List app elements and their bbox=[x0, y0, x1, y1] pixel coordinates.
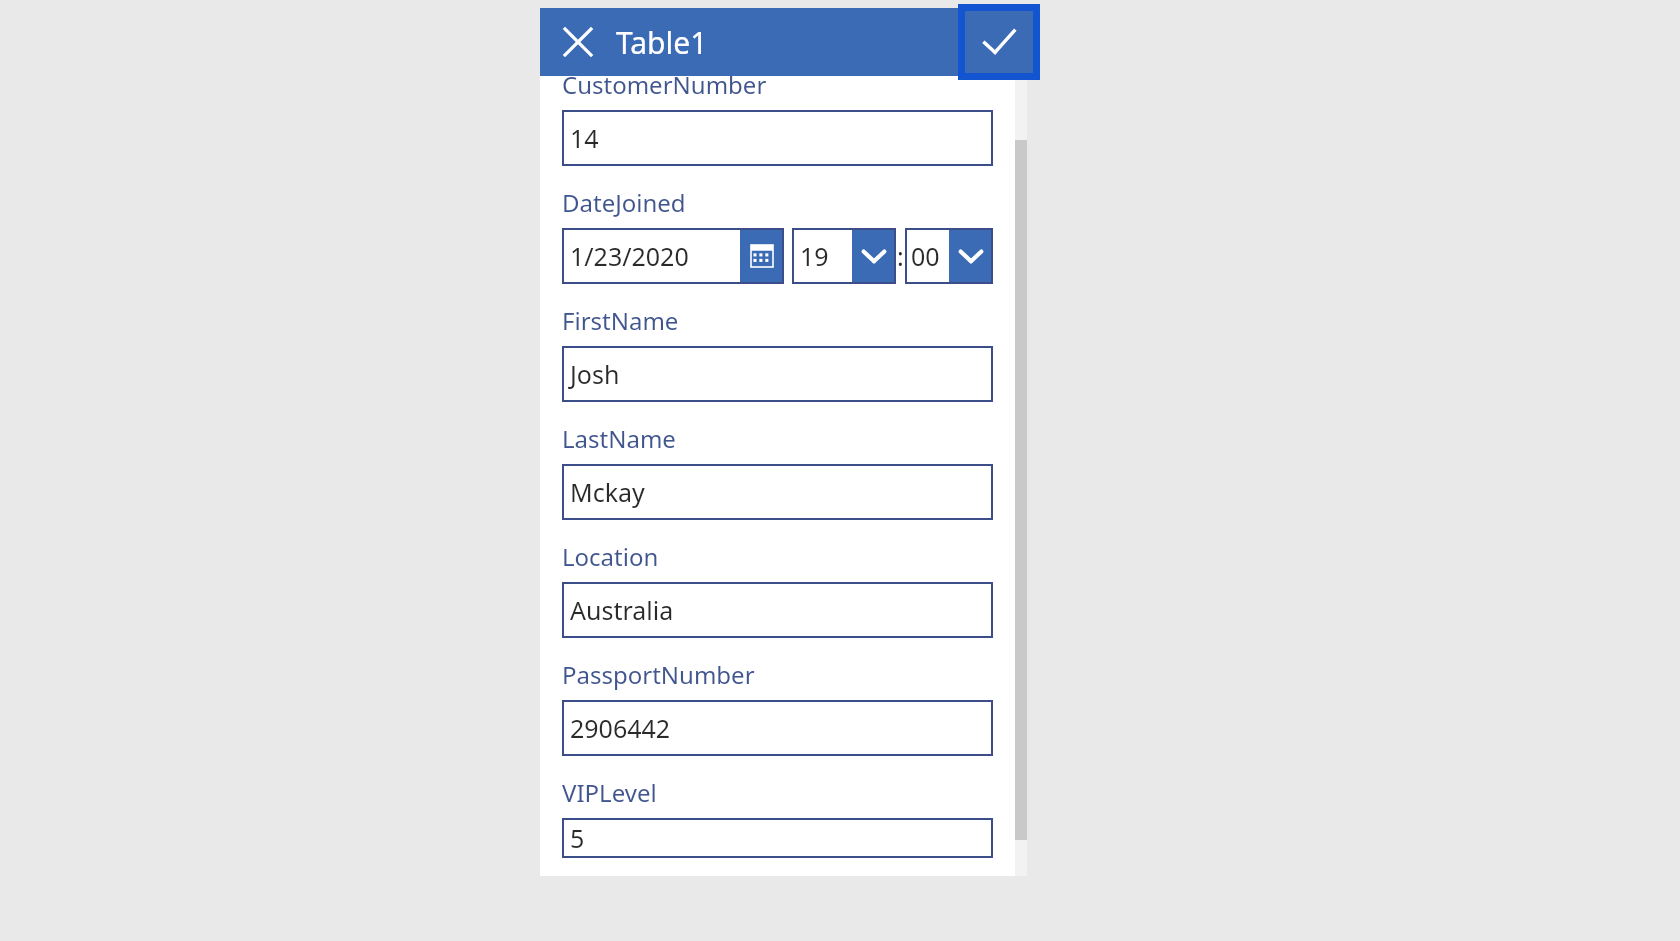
staticText: Table1 bbox=[616, 22, 708, 63]
button[interactable]: 19 bbox=[792, 228, 896, 284]
button[interactable]: Confirm bbox=[965, 11, 1033, 73]
staticText: Location bbox=[562, 540, 659, 573]
button[interactable]: Beto Yark bbox=[562, 8, 993, 48]
staticText: FirstName bbox=[562, 304, 679, 337]
staticText: 19 bbox=[800, 239, 852, 273]
staticText: PassportNumber bbox=[562, 658, 755, 691]
staticText: VIPLevel bbox=[562, 776, 657, 809]
staticText: Mckay bbox=[570, 475, 645, 509]
staticText: 5 bbox=[570, 821, 585, 855]
staticText: CustomerNumber bbox=[562, 68, 767, 101]
button[interactable]: Close bbox=[552, 16, 604, 68]
button[interactable]: 14 bbox=[562, 110, 993, 166]
button[interactable]: 1/23/2020 bbox=[562, 228, 784, 284]
button[interactable]: 00 bbox=[905, 228, 993, 284]
button[interactable]: Select hour bbox=[852, 228, 896, 284]
staticText: 1/23/2020 bbox=[570, 239, 740, 273]
staticText: 2906442 bbox=[570, 711, 671, 745]
staticText: Josh bbox=[570, 357, 620, 391]
staticText: 00 bbox=[911, 239, 949, 273]
button[interactable]: 5 bbox=[562, 818, 993, 858]
button[interactable]: Australia bbox=[562, 582, 993, 638]
staticText: : bbox=[897, 239, 904, 273]
staticText: Australia bbox=[570, 593, 674, 627]
staticText: Beto Yark bbox=[570, 8, 682, 36]
button[interactable]: Mckay bbox=[562, 464, 993, 520]
button[interactable]: 2906442 bbox=[562, 700, 993, 756]
staticText: DateJoined bbox=[562, 186, 686, 219]
button[interactable]: Pick date bbox=[740, 228, 784, 284]
button[interactable]: Josh bbox=[562, 346, 993, 402]
staticText: LastName bbox=[562, 422, 676, 455]
button[interactable]: Select minute bbox=[949, 228, 993, 284]
staticText: 14 bbox=[570, 121, 599, 155]
